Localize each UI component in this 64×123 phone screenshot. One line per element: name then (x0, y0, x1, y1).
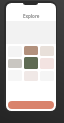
button[interactable] (8, 59, 22, 68)
button[interactable] (24, 57, 38, 69)
staticText: Explore (23, 13, 40, 19)
button[interactable] (40, 46, 54, 56)
button[interactable] (24, 46, 38, 55)
button[interactable] (8, 101, 54, 109)
